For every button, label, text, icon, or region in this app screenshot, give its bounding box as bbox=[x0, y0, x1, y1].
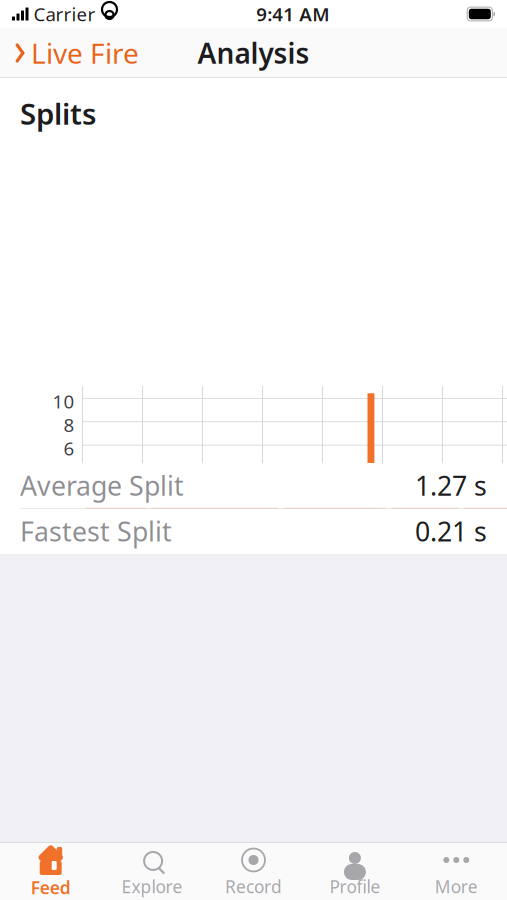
staticText: 0.21 s bbox=[415, 513, 487, 549]
staticText: 6 bbox=[63, 436, 74, 461]
staticText: 20 bbox=[191, 532, 213, 557]
staticText: 0 bbox=[77, 532, 88, 557]
staticText: 1.27 s bbox=[415, 468, 487, 503]
staticText: Splits bbox=[20, 94, 96, 133]
staticText: Analysis bbox=[197, 34, 309, 72]
staticText: Live Fire bbox=[31, 34, 139, 72]
staticText: Feed bbox=[31, 876, 71, 899]
button[interactable]: Record bbox=[203, 841, 304, 900]
staticText: 50 bbox=[371, 532, 393, 557]
staticText: More bbox=[435, 875, 478, 898]
staticText: 4 bbox=[63, 459, 74, 484]
staticText: 9:41 AM bbox=[256, 2, 329, 26]
button[interactable]: Feed bbox=[0, 840, 101, 900]
staticText: 10 bbox=[52, 389, 74, 414]
button[interactable]: Profile bbox=[304, 841, 406, 900]
button[interactable]: Explore bbox=[101, 841, 203, 900]
button[interactable]: More bbox=[406, 841, 507, 900]
staticText: Explore bbox=[122, 875, 183, 898]
staticText: 70 bbox=[491, 532, 507, 557]
staticText: Record bbox=[225, 875, 282, 898]
staticText: 0 bbox=[63, 506, 74, 531]
staticText: Profile bbox=[329, 875, 380, 898]
staticText: 30 bbox=[251, 532, 273, 557]
staticText: 40 bbox=[311, 532, 333, 557]
staticText: 60 bbox=[431, 532, 453, 557]
staticText: 10 bbox=[131, 532, 153, 557]
staticText: Average Split bbox=[20, 468, 184, 503]
button[interactable]: Fastest Split bbox=[0, 509, 507, 554]
staticText: Carrier bbox=[33, 2, 95, 26]
button[interactable]: Average Split bbox=[0, 463, 507, 508]
button[interactable]: Live Fire bbox=[0, 28, 139, 78]
staticText: 2 bbox=[63, 483, 74, 507]
staticText: Fastest Split bbox=[20, 513, 172, 549]
staticText: 8 bbox=[63, 412, 74, 437]
